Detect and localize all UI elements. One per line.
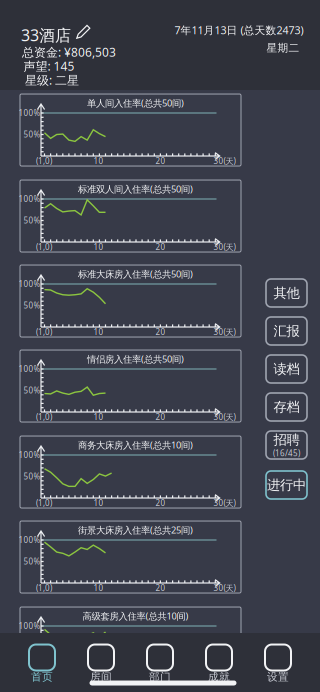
staticText: 商务大床房入住率(总共10间) [78,439,193,451]
staticText: 设置 [267,670,289,683]
button[interactable]: 其他 [266,279,307,307]
staticText: 存档 [273,399,299,415]
staticText: (1,0) [36,669,52,679]
staticText: 10 [93,583,103,593]
button[interactable]: 房间 [71,633,130,692]
staticText: 其他 [273,285,299,301]
staticText: (1,0) [36,327,52,337]
staticText: (16/45) [273,448,300,458]
staticText: (1,0) [36,583,52,593]
staticText: 50% [23,300,40,311]
staticText: 星级: 二星 [25,72,79,88]
button[interactable]: 进行中 [266,471,307,499]
staticText: 100% [18,450,40,460]
staticText: 读档 [273,361,299,377]
staticText: 20 [155,327,165,337]
staticText: 10 [93,242,103,252]
staticText: 7年11月13日 (总天数2473) [174,23,303,37]
staticText: 成就 [208,670,230,683]
staticText: 30(天) [213,583,235,593]
staticText: 50% [23,385,40,396]
staticText: 招聘 [273,431,299,448]
button[interactable]: 存档 [266,393,307,421]
staticText: 星期二 [266,41,299,54]
button[interactable]: 读档 [266,355,307,383]
staticText: 部门 [149,670,171,683]
button[interactable]: Rename hotel [76,23,92,39]
staticText: (1,0) [36,498,52,508]
button[interactable]: 首页 [12,633,71,692]
staticText: 标准双人间入住率(总共50间) [78,183,193,195]
staticText: 街景大床房入住率(总共25间) [78,524,193,536]
staticText: 10 [93,498,103,508]
staticText: 单人间入住率(总共50间) [87,97,184,109]
staticText: 100% [18,279,40,289]
staticText: 10 [93,669,103,679]
staticText: 20 [155,498,165,508]
staticText: 30(天) [213,327,235,337]
staticText: 50% [23,642,40,653]
staticText: 高级套房入住率(总共10间) [82,610,188,622]
staticText: 20 [155,156,165,166]
staticText: 30(天) [213,498,235,508]
staticText: 50% [23,471,40,482]
staticText: (1,0) [36,242,52,252]
staticText: 进行中 [267,477,306,493]
staticText: 声望: 145 [23,58,74,74]
staticText: 20 [155,242,165,252]
staticText: 100% [18,108,40,118]
button[interactable]: 招聘 [266,431,307,459]
staticText: 20 [155,583,165,593]
staticText: 30(天) [213,669,235,679]
staticText: 30(天) [213,242,235,252]
staticText: 总资金: ¥806,503 [22,44,116,60]
staticText: 10 [93,156,103,166]
staticText: 50% [23,215,40,226]
staticText: 20 [155,669,165,679]
staticText: 20 [155,412,165,422]
staticText: 100% [18,535,40,545]
staticText: 汇报 [273,323,299,339]
staticText: 10 [93,412,103,422]
staticText: 50% [23,129,40,140]
staticText: 标准大床房入住率(总共50间) [78,268,193,280]
staticText: 首页 [31,670,53,683]
staticText: 30(天) [213,412,235,422]
staticText: (1,0) [36,156,52,166]
button[interactable]: 部门 [130,633,189,692]
staticText: 100% [18,621,40,631]
staticText: 10 [93,327,103,337]
staticText: 100% [18,364,40,374]
staticText: 房间 [90,670,112,683]
staticText: 100% [18,194,40,204]
staticText: 33酒店 [21,24,71,46]
staticText: 情侣房入住率(总共50间) [87,353,184,365]
button[interactable]: 汇报 [266,317,307,345]
staticText: (1,0) [36,412,52,422]
button[interactable]: 设置 [248,633,307,692]
button[interactable]: 成就 [189,633,248,692]
staticText: 30(天) [213,156,235,166]
staticText: 50% [23,556,40,567]
